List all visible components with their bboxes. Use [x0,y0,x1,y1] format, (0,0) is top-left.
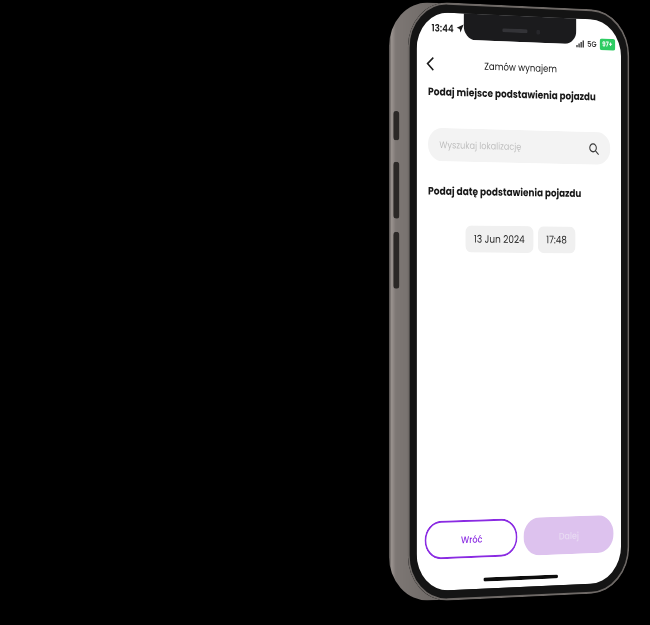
button[interactable]: Dalej [523,515,614,556]
button[interactable]: Wróć [424,518,517,560]
staticText: 13 Jun 2024 [474,231,525,247]
button[interactable]: 17:48 [538,226,575,253]
staticText: Podaj miejsce podstawienia pojazdu [428,84,596,104]
staticText: 5G [587,39,597,50]
staticText: Wyszukaj lokalizację [439,138,522,153]
button[interactable]: 13 Jun 2024 [465,225,534,253]
button[interactable]: Wyszukaj lokalizację [428,127,610,165]
staticText: Dalej [559,529,580,543]
staticText: Wróć [461,532,482,546]
button[interactable]: Back [420,51,441,76]
staticText: 17:48 [546,232,567,247]
staticText: 97+ [602,39,613,50]
staticText: Podaj datę podstawienia pojazdu [428,183,581,201]
staticText: 13:44 [431,20,454,35]
staticText: Zamów wynajem [484,59,557,75]
